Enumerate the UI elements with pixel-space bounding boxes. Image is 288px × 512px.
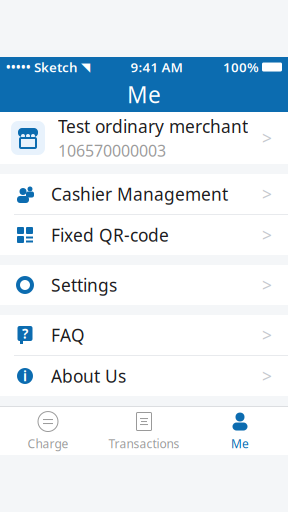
staticText: Transactions [108,435,179,451]
button[interactable]: Settings [0,265,288,305]
button[interactable]: Fixed QR-code [0,215,288,255]
staticText: Settings [51,273,117,296]
staticText: > [262,126,272,149]
staticText: > [262,223,272,246]
staticText: > [262,182,272,205]
button[interactable]: Cashier Management [0,174,288,214]
staticText: i [23,367,27,385]
staticText: Cashier Management [51,182,228,205]
staticText: Sketch [34,58,78,76]
staticText: Fixed QR-code [51,223,169,246]
staticText: 9:41 AM [130,58,182,76]
staticText: Me [127,79,161,109]
button[interactable]: Charge [0,407,96,455]
button[interactable]: Transactions [96,407,192,455]
staticText: 106570000003 [58,140,166,161]
button[interactable]: i [0,356,288,396]
staticText: ••••• [6,59,31,75]
staticText: 100% [223,58,259,76]
staticText: > [262,364,272,387]
staticText: FAQ [51,323,85,346]
staticText: Test ordinary merchant [58,115,248,138]
button[interactable]: Me [192,407,288,455]
button[interactable]: ? [0,315,288,355]
button[interactable]: Test ordinary merchant [0,112,288,164]
staticText: ◥ [81,60,90,74]
staticText: Charge [27,435,68,451]
staticText: ? [22,325,28,342]
staticText: Me [231,435,249,451]
staticText: > [262,273,272,296]
staticText: About Us [51,364,126,387]
staticText: > [262,323,272,346]
